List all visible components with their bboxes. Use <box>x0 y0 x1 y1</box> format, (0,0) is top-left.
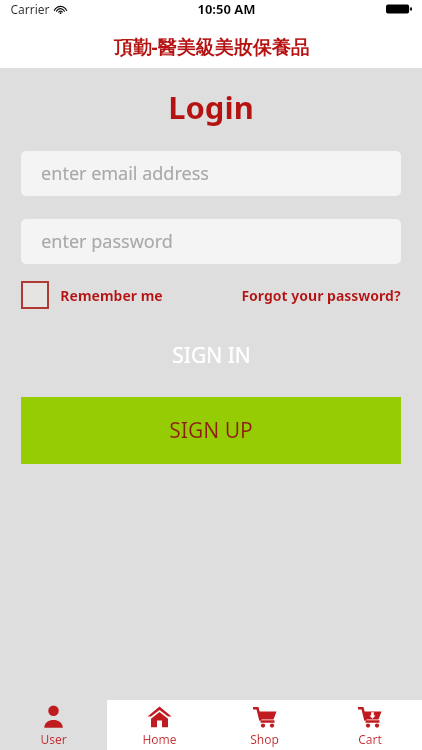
button[interactable]: Forgot your password? <box>241 286 401 305</box>
staticText: Home <box>142 731 177 747</box>
button[interactable]: Cart <box>317 700 422 750</box>
button[interactable]: enter password <box>21 219 401 264</box>
staticText: 10:50 AM <box>197 0 256 18</box>
button[interactable]: SIGN UP <box>21 397 401 464</box>
staticText: SIGN IN <box>172 341 251 370</box>
staticText: Login <box>168 86 254 128</box>
staticText: Shop <box>250 731 279 747</box>
button[interactable]: Remember me <box>21 281 163 309</box>
staticText: Carrier <box>10 1 50 17</box>
staticText: SIGN UP <box>169 416 253 445</box>
button[interactable]: Home <box>107 700 212 750</box>
button[interactable]: Shop <box>212 700 317 750</box>
staticText: enter password <box>41 229 173 254</box>
staticText: 頂勤-醫美級美妝保養品 <box>113 34 310 60</box>
staticText: Cart <box>358 731 382 747</box>
button[interactable]: enter email address <box>21 151 401 196</box>
button[interactable]: User <box>0 700 107 750</box>
staticText: Remember me <box>60 286 163 305</box>
staticText: User <box>40 731 67 747</box>
staticText: enter email address <box>41 161 209 186</box>
button[interactable]: SIGN IN <box>0 335 422 375</box>
staticText: Forgot your password? <box>241 286 401 305</box>
